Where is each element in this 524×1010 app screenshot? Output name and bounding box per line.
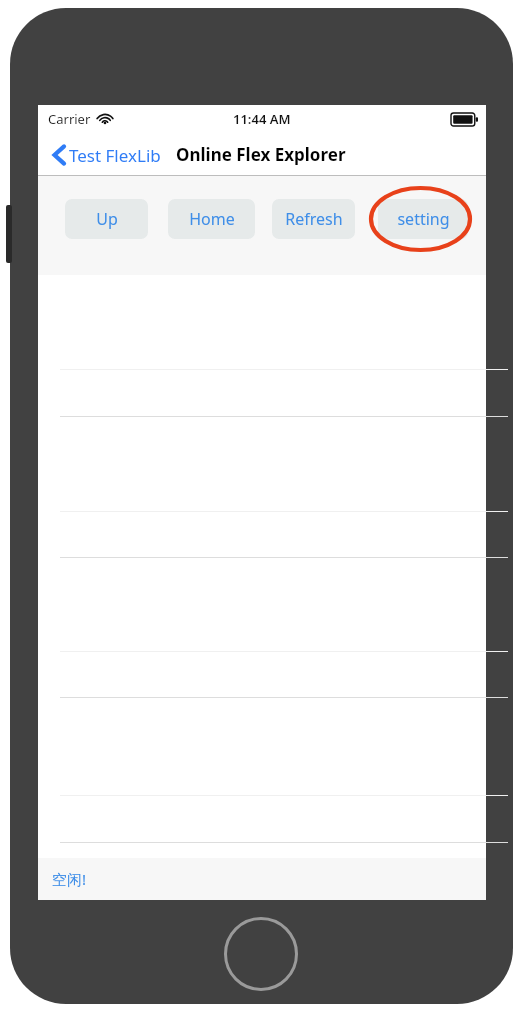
staticText: Test FlexLib (69, 144, 161, 167)
button[interactable]: setting (378, 199, 468, 239)
staticText: 11:44 AM (233, 110, 291, 128)
staticText: setting (397, 208, 450, 230)
staticText: 空闲! (52, 869, 87, 889)
button[interactable]: Refresh (272, 199, 355, 239)
staticText: Up (96, 208, 118, 230)
staticText: Online Flex Explorer (176, 143, 346, 166)
button[interactable]: Up (65, 199, 148, 239)
button[interactable]: Test FlexLib (52, 143, 161, 167)
staticText: Refresh (285, 208, 343, 230)
button[interactable]: Home (168, 199, 255, 239)
staticText: Carrier (48, 110, 91, 128)
staticText: Home (189, 208, 235, 230)
